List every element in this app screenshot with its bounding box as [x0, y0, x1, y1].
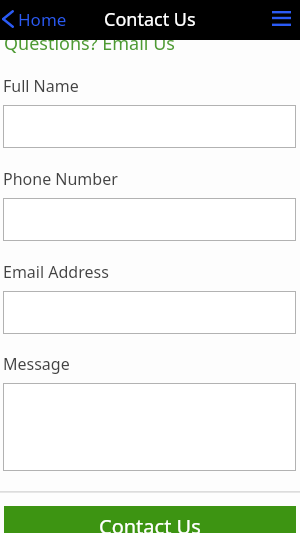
staticText: Message	[3, 353, 70, 375]
staticText: Questions? Email Us	[4, 31, 175, 56]
button[interactable]	[3, 198, 296, 241]
button[interactable]	[3, 383, 296, 471]
staticText: Home	[18, 8, 67, 31]
button[interactable]	[3, 105, 296, 148]
staticText: Contact Us	[104, 7, 196, 32]
staticText: Phone Number	[3, 168, 118, 190]
button[interactable]: Contact Us	[4, 506, 296, 533]
button[interactable]: Open menu	[264, 0, 300, 40]
staticText: Full Name	[3, 75, 79, 97]
button[interactable]	[3, 291, 296, 334]
staticText: Email Address	[3, 261, 109, 283]
staticText: Contact Us	[99, 513, 201, 533]
button[interactable]: Home	[0, 0, 72, 40]
